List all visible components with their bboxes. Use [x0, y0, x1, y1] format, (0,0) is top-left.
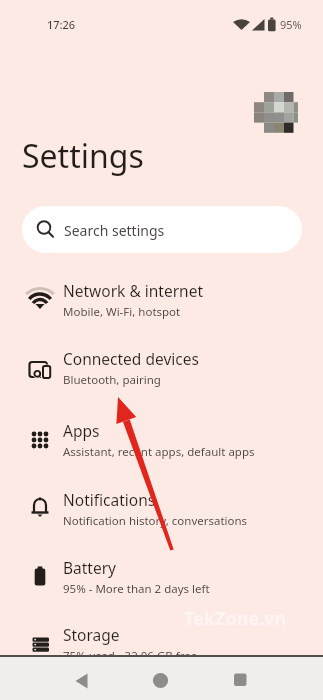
staticText: Network & internet [63, 280, 203, 301]
staticText: Storage [63, 624, 120, 645]
button[interactable] [107, 657, 215, 700]
staticText: Connected devices [63, 348, 199, 369]
staticText: Bluetooth, pairing [63, 372, 161, 388]
staticText: Mobile, Wi-Fi, hotspot [63, 304, 181, 320]
staticText: TekZone.vn [184, 606, 287, 631]
staticText: Settings [22, 134, 144, 178]
staticText: Assistant, recent apps, default apps [63, 444, 255, 460]
staticText: Notification history, conversations [63, 513, 248, 529]
staticText: 17:26 [47, 17, 76, 32]
button[interactable]: Notifications [0, 477, 323, 545]
staticText: 95% - More than 2 days left [63, 581, 210, 597]
button[interactable] [0, 657, 107, 700]
button[interactable]: Apps [0, 408, 323, 476]
staticText: 95% [280, 17, 302, 32]
staticText: Battery [63, 557, 117, 578]
button[interactable]: Connected devices [0, 336, 323, 404]
button[interactable]: Search settings [22, 206, 302, 253]
button[interactable] [215, 657, 323, 700]
staticText: Apps [63, 420, 100, 441]
button[interactable] [250, 88, 300, 136]
button[interactable]: Network & internet [0, 268, 323, 336]
staticText: Search settings [64, 221, 165, 240]
staticText: 75% used - 32.06 GB free [63, 648, 198, 664]
button[interactable]: Storage [0, 612, 323, 680]
button[interactable]: Battery [0, 545, 323, 613]
staticText: Notifications [63, 489, 156, 510]
